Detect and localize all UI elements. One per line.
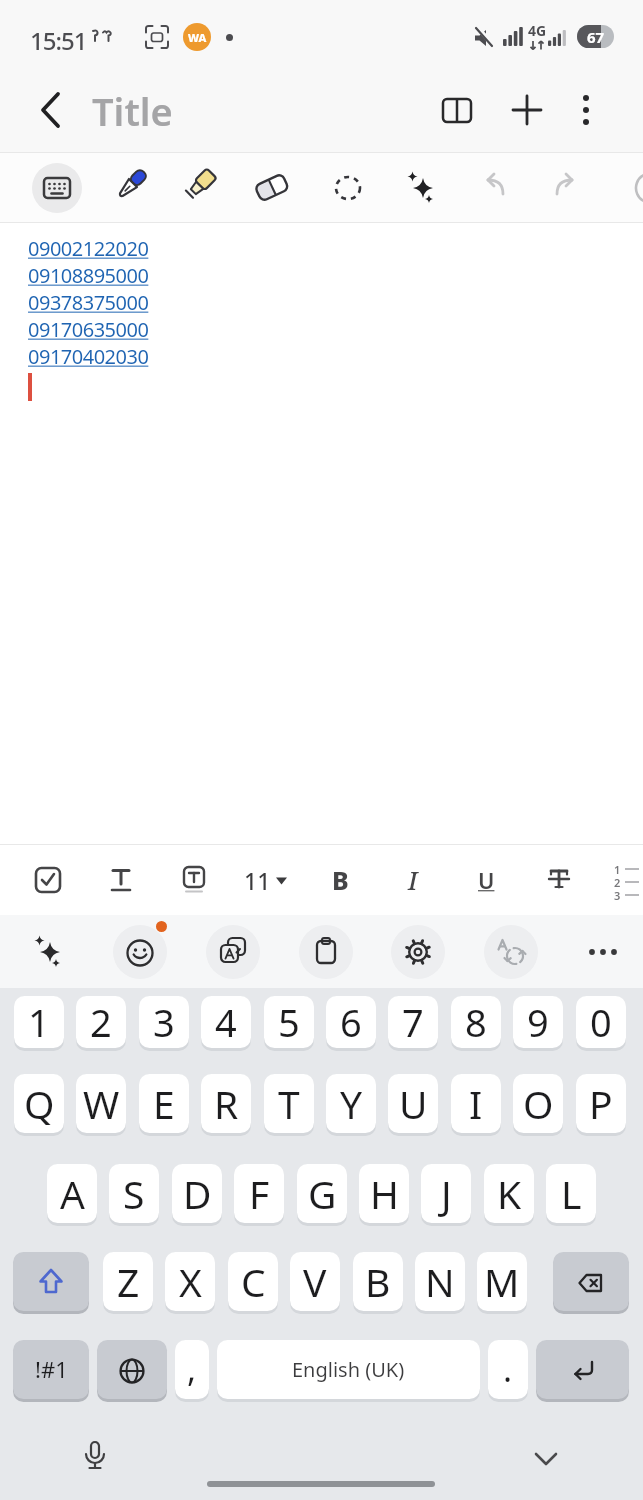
button[interactable]: 2 (76, 996, 126, 1051)
button[interactable] (13, 1252, 89, 1314)
button[interactable] (391, 925, 445, 979)
button[interactable]: K (484, 1164, 534, 1226)
button[interactable]: 09378375000 (28, 289, 149, 316)
staticText: B (365, 1255, 391, 1308)
button[interactable] (97, 1340, 167, 1402)
button[interactable]: F (234, 1164, 284, 1226)
staticText: . (503, 1346, 513, 1392)
button[interactable]: 0 (576, 996, 626, 1051)
button[interactable] (553, 1252, 629, 1314)
button[interactable]: V (290, 1252, 340, 1314)
button[interactable]: 4 (201, 996, 251, 1051)
button[interactable] (247, 163, 297, 213)
button[interactable] (530, 1443, 562, 1475)
button[interactable] (505, 88, 549, 132)
button[interactable]: M (477, 1252, 527, 1314)
button[interactable] (323, 163, 373, 213)
button[interactable]: S (109, 1164, 159, 1226)
button[interactable]: G (297, 1164, 347, 1226)
button[interactable] (541, 163, 591, 213)
staticText: W (83, 1077, 120, 1130)
staticText: !#1 (35, 1354, 68, 1384)
button[interactable]: 8 (451, 996, 501, 1051)
button[interactable]: B (316, 856, 364, 904)
button[interactable]: N (415, 1252, 465, 1314)
button[interactable]: C (228, 1252, 278, 1314)
button[interactable]: E (139, 1074, 189, 1136)
staticText: T (278, 1077, 300, 1130)
staticText: U (478, 865, 495, 895)
button[interactable] (535, 856, 583, 904)
button[interactable]: U (462, 856, 510, 904)
button[interactable] (21, 925, 75, 979)
button[interactable] (24, 856, 72, 904)
staticText: 09002122020 (28, 235, 149, 262)
staticText: C (241, 1255, 266, 1308)
staticText: K (497, 1167, 522, 1220)
button[interactable]: 7 (388, 996, 438, 1051)
button[interactable]: O (513, 1074, 563, 1136)
button[interactable]: . (488, 1340, 528, 1402)
button[interactable]: Title (92, 85, 173, 137)
button[interactable]: U (388, 1074, 438, 1136)
staticText: 09170402030 (28, 343, 149, 370)
button[interactable]: Y (326, 1074, 376, 1136)
button[interactable] (77, 1438, 113, 1474)
staticText: 0 (590, 996, 612, 1048)
button[interactable] (103, 163, 153, 213)
button[interactable]: 9 (513, 996, 563, 1051)
staticText: F (249, 1167, 270, 1220)
staticText: E (153, 1077, 175, 1130)
button[interactable]: 5 (264, 996, 314, 1051)
button[interactable]: B (353, 1252, 403, 1314)
button[interactable] (206, 925, 260, 979)
staticText: Z (117, 1255, 140, 1308)
button[interactable] (576, 925, 630, 979)
button[interactable]: X (165, 1252, 215, 1314)
button[interactable]: I (451, 1074, 501, 1136)
staticText: 2 (614, 875, 621, 888)
button[interactable] (564, 88, 608, 132)
button[interactable]: T (264, 1074, 314, 1136)
button[interactable]: I (389, 856, 437, 904)
button[interactable]: 1 (614, 862, 643, 910)
staticText: , (187, 1346, 197, 1392)
button[interactable]: A (47, 1164, 97, 1226)
button[interactable]: J (421, 1164, 471, 1226)
button[interactable] (299, 925, 353, 979)
button[interactable] (484, 925, 538, 979)
button[interactable] (30, 89, 74, 133)
button[interactable] (32, 163, 82, 213)
button[interactable]: 09108895000 (28, 262, 149, 289)
button[interactable]: Q (14, 1074, 64, 1136)
staticText: 09170635000 (28, 316, 149, 343)
button[interactable] (174, 163, 224, 213)
button[interactable]: Z (103, 1252, 153, 1314)
button[interactable]: L (546, 1164, 596, 1226)
button[interactable] (396, 163, 446, 213)
button[interactable]: 09002122020 (28, 235, 149, 262)
button[interactable]: 09170635000 (28, 316, 149, 343)
button[interactable]: R (201, 1074, 251, 1136)
button[interactable] (97, 856, 145, 904)
button[interactable] (170, 856, 218, 904)
button[interactable]: 1 (14, 996, 64, 1051)
button[interactable]: 6 (326, 996, 376, 1051)
button[interactable]: 09170402030 (28, 343, 149, 370)
button[interactable] (113, 925, 167, 979)
button[interactable]: H (359, 1164, 409, 1226)
button[interactable]: English (UK) (217, 1340, 480, 1402)
button[interactable] (536, 1340, 629, 1402)
button[interactable] (435, 88, 479, 132)
button[interactable]: , (175, 1340, 209, 1402)
staticText: B (332, 863, 349, 897)
button[interactable]: !#1 (13, 1340, 89, 1402)
button[interactable]: 11 (231, 856, 299, 904)
staticText: 1 (28, 996, 50, 1048)
button[interactable]: W (76, 1074, 126, 1136)
button[interactable]: P (576, 1074, 626, 1136)
button[interactable]: D (172, 1164, 222, 1226)
button[interactable]: 3 (139, 996, 189, 1051)
staticText: 9 (527, 996, 549, 1048)
button[interactable] (469, 163, 519, 213)
